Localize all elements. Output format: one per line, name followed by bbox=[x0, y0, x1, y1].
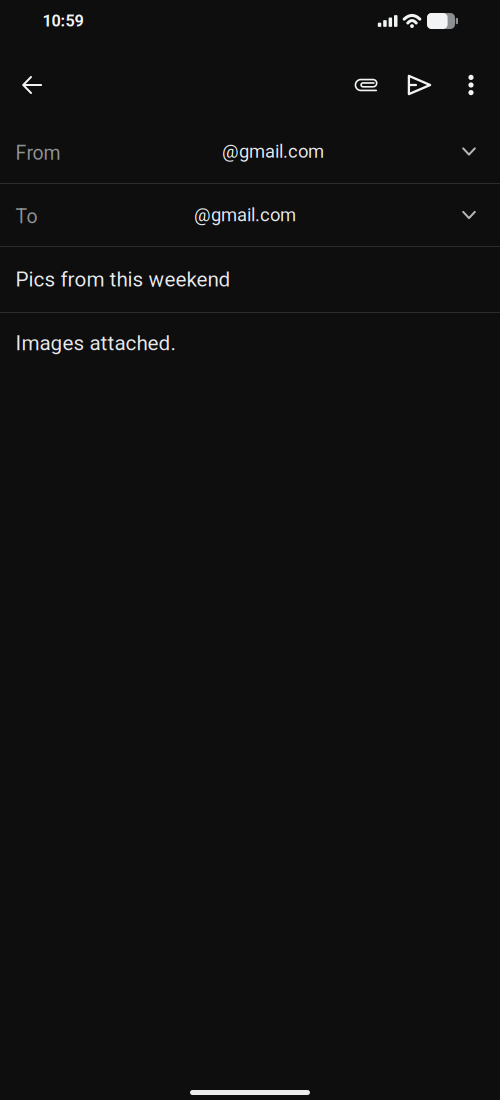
staticText: From bbox=[15, 142, 60, 164]
button[interactable]: Send bbox=[393, 57, 446, 113]
button[interactable]: More options bbox=[446, 57, 496, 113]
button[interactable]: Attach file bbox=[340, 57, 393, 113]
staticText: Images attached. bbox=[15, 331, 175, 355]
staticText: @gmail.com bbox=[222, 141, 324, 162]
staticText: 10:59 bbox=[42, 11, 83, 31]
button[interactable]: Pics from this weekend bbox=[0, 247, 500, 312]
button[interactable]: From bbox=[0, 120, 500, 183]
button[interactable]: Back bbox=[6, 57, 58, 113]
staticText: Pics from this weekend bbox=[15, 267, 230, 292]
staticText: To bbox=[15, 205, 37, 228]
staticText: @gmail.com bbox=[194, 204, 296, 226]
button[interactable]: To bbox=[0, 184, 500, 246]
button[interactable]: Images attached. bbox=[0, 313, 500, 1090]
